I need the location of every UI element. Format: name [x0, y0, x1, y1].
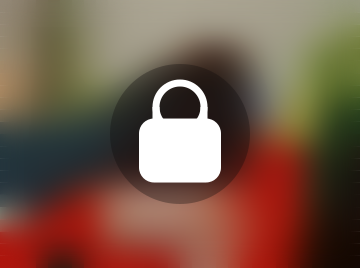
- button[interactable]: Unlock content: [0, 0, 360, 268]
